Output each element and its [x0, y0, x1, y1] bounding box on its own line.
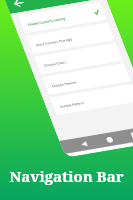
other: Recents	[128, 129, 133, 142]
staticText: Choose Pattern	[57, 90, 86, 118]
staticText: Choose Colors	[42, 51, 68, 76]
button[interactable]: Choose Pattern	[44, 52, 133, 147]
staticText: Choose Themes	[49, 70, 78, 97]
staticText: Don't Connect This App	[34, 22, 74, 60]
other: Home	[103, 133, 117, 146]
staticText: Enable Customs Setting	[26, 1, 67, 40]
button[interactable]: Choose Themes	[36, 32, 133, 127]
other: Back	[77, 138, 91, 151]
button[interactable]: Choose Colors	[28, 11, 129, 106]
staticText: Navigation Bar	[0, 166, 133, 186]
button[interactable]: Don't Connect This App	[20, 0, 121, 86]
button[interactable]: Enable Customs Setting	[12, 0, 113, 65]
button[interactable]: Back	[0, 0, 115, 51]
other: Back	[8, 0, 30, 13]
